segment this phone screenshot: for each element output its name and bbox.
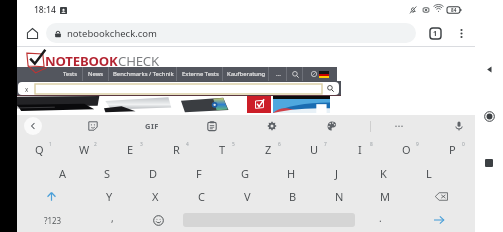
button[interactable]: H [268,162,314,185]
staticText: G [241,166,250,181]
staticText: F [196,166,202,181]
button[interactable]: L [406,162,452,185]
button[interactable] [303,67,337,81]
button[interactable]: Home [20,21,44,45]
button[interactable]: ?123 [17,208,89,232]
staticText: x [25,85,29,93]
button[interactable]: D [130,162,176,185]
staticText: Externe Tests [182,70,219,78]
staticText: M [380,189,390,204]
staticText: CHECK [118,52,159,70]
button[interactable]: Home [476,103,502,129]
staticText: X [152,189,159,204]
button[interactable]: ... [269,67,287,81]
button[interactable]: A [40,162,85,185]
button[interactable]: Back [476,56,502,82]
button[interactable]: Externe Tests [177,67,223,81]
button[interactable]: C [178,185,224,208]
button[interactable]: Emoji [135,208,181,232]
button[interactable]: R [153,137,199,162]
staticText: Benchmarks / Technik [113,70,174,78]
staticText: L [426,166,432,181]
staticText: , [111,211,114,225]
staticText: 18:14 [34,4,56,16]
button[interactable]: W [62,137,107,162]
staticText: Q [35,142,44,157]
button[interactable]: notebookcheck.com [46,23,416,43]
staticText: . [379,211,382,225]
staticText: K [380,166,387,181]
staticText: Y [106,189,113,204]
button[interactable]: Clipboard [203,117,221,135]
staticText: Z [265,142,272,157]
staticText: 84 [451,7,457,13]
button[interactable]: Themes [323,117,341,135]
staticText: GIF [145,121,159,131]
button[interactable]: G [222,162,268,185]
button[interactable]: Stickers [84,117,102,135]
button[interactable]: S [85,162,130,185]
button[interactable]: Kaufberatung [223,67,269,81]
button[interactable]: More [390,117,408,135]
button[interactable]: More options [451,23,471,43]
button[interactable]: Enter [403,208,475,232]
staticText: 3 [140,141,143,148]
button[interactable]: Q [17,137,62,162]
button[interactable]: P [429,137,475,162]
button[interactable]: . [357,208,403,232]
button[interactable]: , [89,208,135,232]
button[interactable]: Tabs [425,23,445,43]
button[interactable]: B [270,185,316,208]
button[interactable] [35,84,322,94]
staticText: W [79,142,90,157]
button[interactable]: Search site [287,67,303,81]
staticText: D [149,166,158,181]
button[interactable]: I [337,137,383,162]
staticText: ?123 [44,215,62,226]
staticText: S [104,166,111,181]
button[interactable]: F [176,162,222,185]
staticText: A [59,166,67,181]
button[interactable]: Recent apps [476,150,502,176]
staticText: J [335,166,339,181]
button[interactable]: Shift [17,185,86,208]
button[interactable]: V [224,185,270,208]
staticText: B [289,189,297,204]
button[interactable]: Voice input [450,117,468,135]
button[interactable]: Backspace [408,185,475,208]
staticText: 2 [94,141,97,148]
staticText: R [173,142,180,157]
staticText: News [88,70,104,78]
button[interactable]: News [83,67,109,81]
button[interactable]: O [383,137,429,162]
button[interactable]: J [314,162,360,185]
staticText: 6 [278,141,281,148]
button[interactable]: N [316,185,362,208]
staticText: Tests [63,70,77,78]
staticText: T [219,142,226,157]
button[interactable]: Settings [263,117,281,135]
button[interactable]: Z [245,137,291,162]
button[interactable]: Tests [57,67,83,81]
button[interactable]: Benchmarks / Technik [109,67,177,81]
button[interactable]: T [199,137,245,162]
staticText: U [310,142,319,157]
button[interactable]: Y [86,185,132,208]
staticText: 5 [232,141,235,148]
staticText: notebookcheck.com [67,27,157,40]
staticText: NOTEBOOK [45,52,118,70]
staticText: I [358,142,362,157]
button[interactable]: K [360,162,406,185]
button[interactable]: M [362,185,408,208]
button[interactable]: U [291,137,337,162]
button[interactable]: Back [24,117,42,135]
button[interactable]: E [107,137,153,162]
button[interactable]: GIF [141,117,163,135]
staticText: Kaufberatung [227,70,266,78]
staticText: 8 [370,141,373,148]
staticText: 0 [462,141,465,148]
staticText: 1 [433,29,438,39]
staticText: C [198,189,205,204]
button[interactable]: X [132,185,178,208]
